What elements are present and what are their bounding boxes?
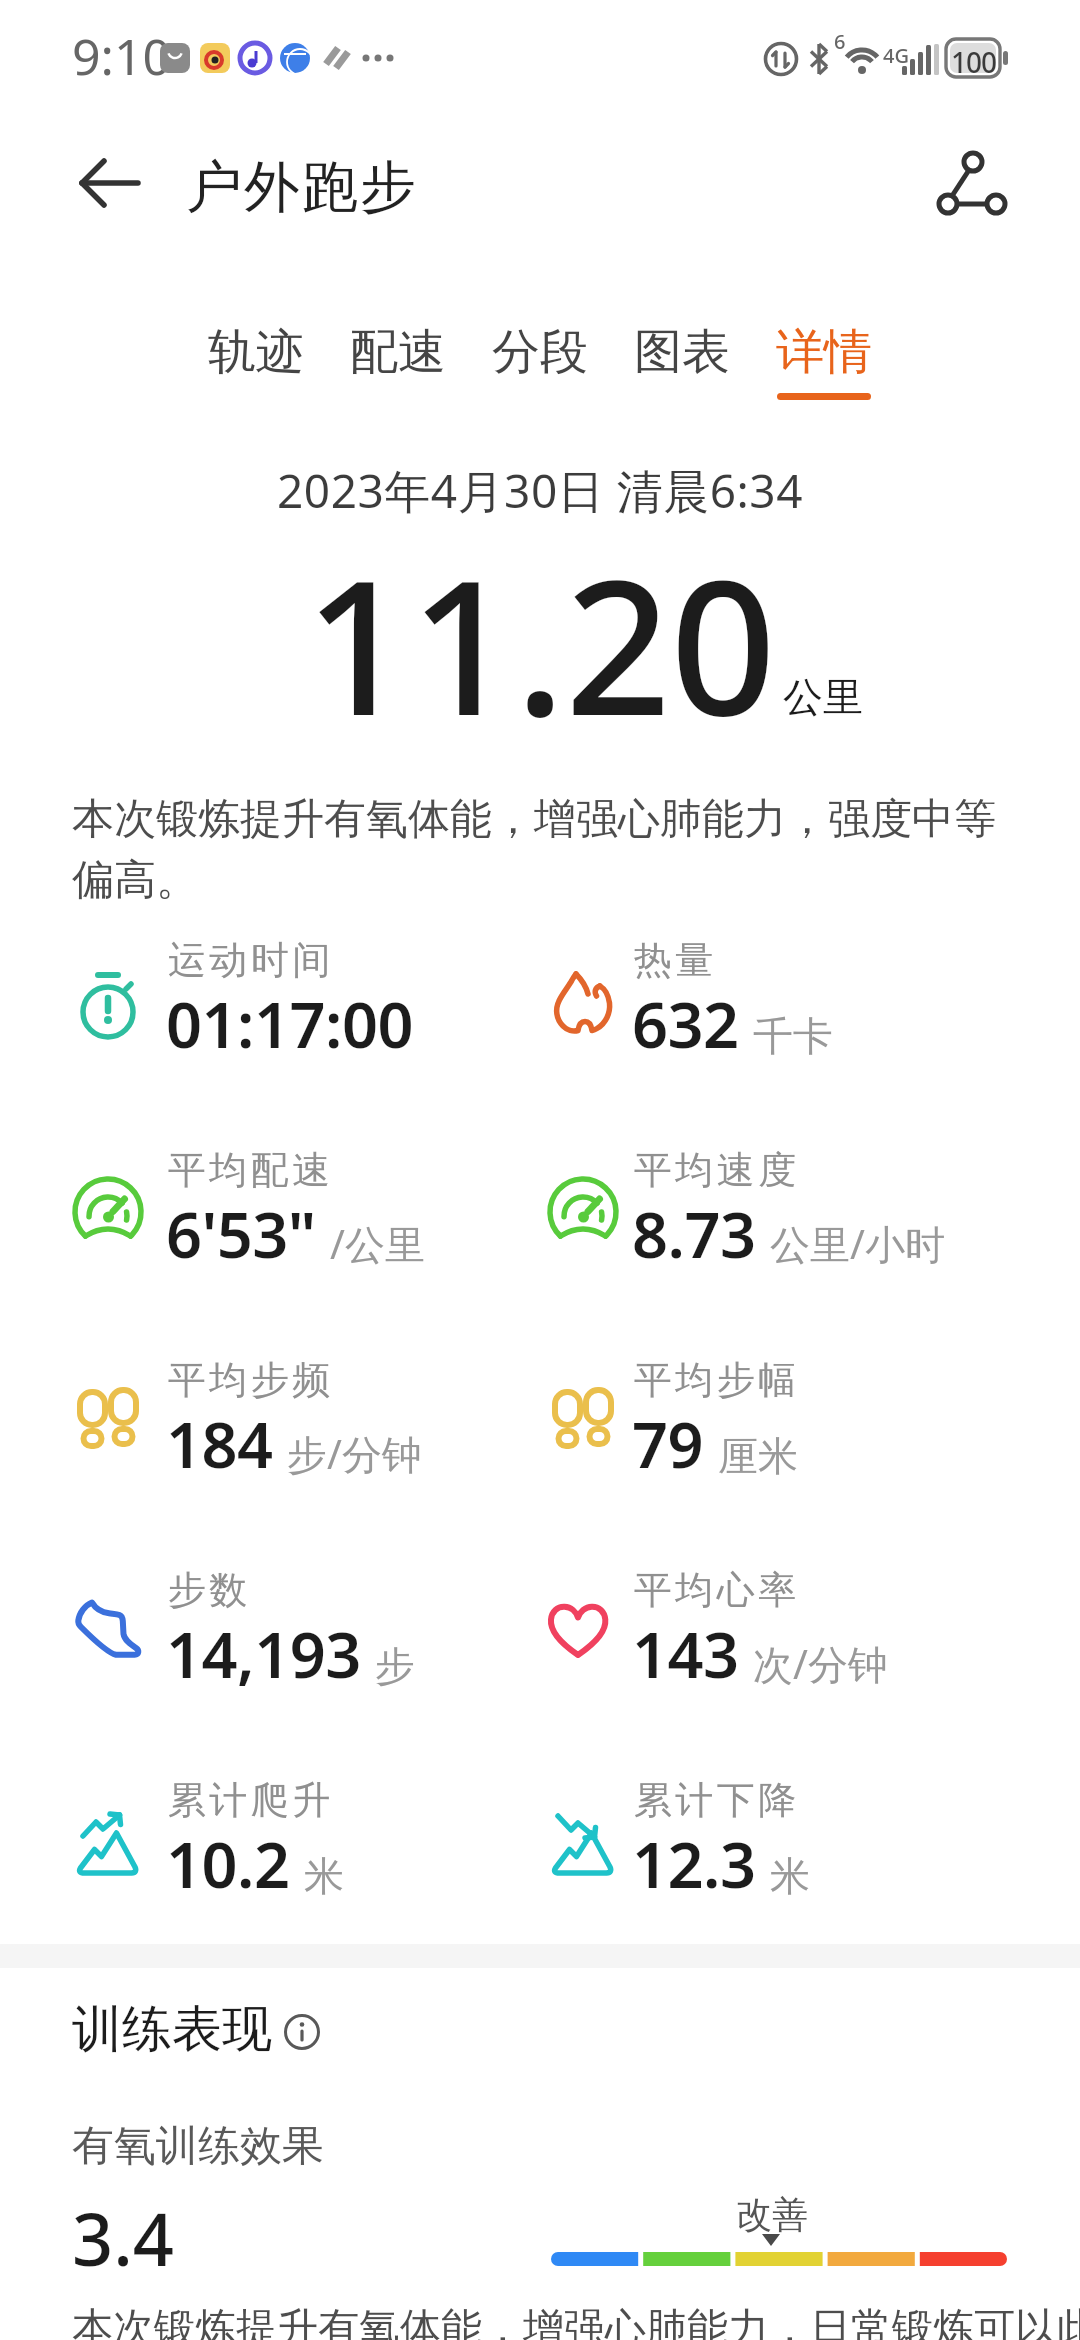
staticText: 6'53" xyxy=(166,1191,316,1277)
staticText: 9:10 xyxy=(72,22,172,90)
button[interactable]: 配速 xyxy=(350,322,446,393)
staticText: 公里 xyxy=(783,672,863,722)
staticText: 厘米 xyxy=(718,1431,798,1481)
staticText: 热量 xyxy=(632,936,715,984)
staticText: 详情 xyxy=(776,322,872,382)
staticText: 8.73 xyxy=(632,1191,756,1277)
staticText: 公里/小时 xyxy=(770,1216,945,1271)
button[interactable] xyxy=(925,138,1020,228)
staticText: 12.3 xyxy=(632,1821,756,1907)
staticText: 累计下降 xyxy=(632,1776,798,1824)
staticText: 千卡 xyxy=(753,1011,833,1061)
staticText: 平均心率 xyxy=(632,1566,798,1614)
staticText: 平均配速 xyxy=(166,1146,332,1194)
staticText: 米 xyxy=(304,1851,344,1901)
staticText: 平均步幅 xyxy=(632,1356,798,1404)
staticText: 143 xyxy=(632,1611,739,1697)
staticText: 本次锻炼提升有氧体能，增强心肺能力，强度中等 偏高。 xyxy=(72,793,996,906)
staticText: 平均步频 xyxy=(166,1356,332,1404)
button[interactable]: 轨迹 xyxy=(208,322,304,393)
staticText: 6 xyxy=(834,28,846,55)
staticText: 2023年4月30日 清晨6:34 xyxy=(0,459,1080,522)
staticText: 184 xyxy=(166,1401,273,1487)
staticText: 14,193 xyxy=(166,1611,361,1697)
staticText: 训练表现 xyxy=(72,1998,272,2061)
staticText: 10.2 xyxy=(166,1821,290,1907)
button[interactable]: 图表 xyxy=(634,322,730,393)
staticText: 轨迹 xyxy=(208,322,304,382)
staticText: 配速 xyxy=(350,322,446,382)
staticText: 100 xyxy=(951,43,997,81)
button[interactable]: 详情 xyxy=(776,322,872,400)
staticText: 01:17:00 xyxy=(166,981,413,1067)
button[interactable] xyxy=(58,145,148,225)
button[interactable] xyxy=(282,2012,322,2052)
staticText: 分段 xyxy=(492,322,588,382)
staticText: 本次锻炼提升有氧体能，增强心肺能力，日常锻炼可以此强 xyxy=(72,2303,1080,2340)
staticText: 次/分钟 xyxy=(753,1636,888,1691)
staticText: 有氧训练效果 xyxy=(72,2120,324,2173)
staticText: /公里 xyxy=(330,1216,425,1271)
staticText: 平均速度 xyxy=(632,1146,798,1194)
staticText: 运动时间 xyxy=(166,936,332,984)
staticText: 11.20 xyxy=(0,517,1080,769)
staticText: 图表 xyxy=(634,322,730,382)
staticText: 米 xyxy=(770,1851,810,1901)
staticText: 户外跑步 xyxy=(185,152,417,223)
staticText: 3.4 xyxy=(72,2189,174,2287)
staticText: 改善 xyxy=(736,2192,808,2237)
staticText: 步 xyxy=(375,1641,415,1691)
staticText: 632 xyxy=(632,981,739,1067)
staticText: 79 xyxy=(632,1401,704,1487)
staticText: 步/分钟 xyxy=(287,1426,422,1481)
staticText: 步数 xyxy=(166,1566,249,1614)
staticText: 累计爬升 xyxy=(166,1776,332,1824)
button[interactable]: 分段 xyxy=(492,322,588,393)
staticText: 4G xyxy=(883,42,909,69)
